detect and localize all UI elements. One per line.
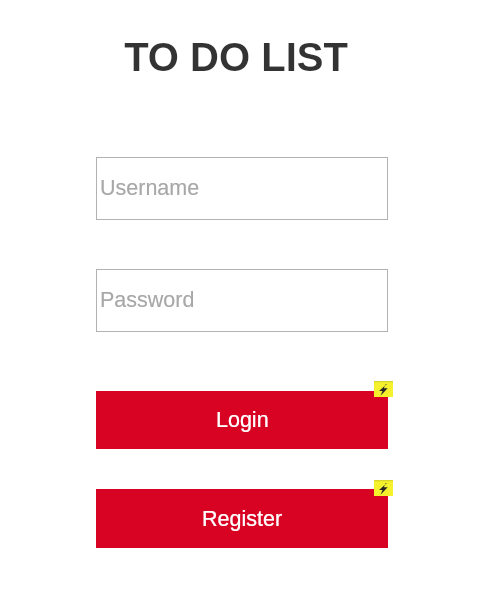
button[interactable]: Login	[96, 391, 388, 449]
button[interactable]: Autofill suggestion	[374, 480, 393, 496]
staticText: Username	[100, 176, 200, 200]
button[interactable]: Autofill suggestion	[374, 381, 393, 397]
button[interactable]: Password	[96, 269, 388, 332]
staticText: Register	[202, 507, 283, 531]
staticText: Password	[100, 288, 195, 312]
button[interactable]: Username	[96, 157, 388, 220]
staticText: TO DO LIST	[0, 35, 478, 611]
staticText: Login	[216, 408, 269, 432]
button[interactable]: Register	[96, 489, 388, 548]
